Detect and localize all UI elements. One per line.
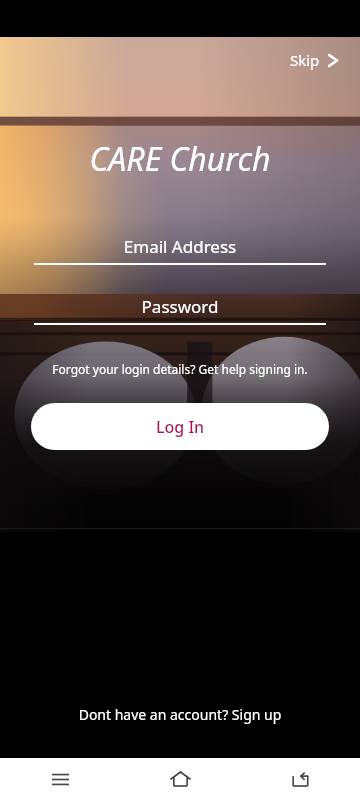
button[interactable]: Dont have an account? Sign up [0,699,360,730]
button[interactable]: Skip [274,37,360,80]
button[interactable]: Forgot your login details? Get help sign… [0,361,360,377]
staticText: Skip [290,50,320,70]
button[interactable]: Password [0,295,360,325]
staticText: Password [34,295,326,318]
button[interactable]: Back [240,758,360,800]
button[interactable]: Email Address [0,235,360,265]
button[interactable]: Recent apps [0,758,120,800]
staticText: CARE Church [0,137,360,181]
button[interactable]: Home [120,758,240,800]
button[interactable]: Log In [31,403,329,450]
staticText: Log In [156,416,205,438]
staticText: Email Address [34,235,326,258]
